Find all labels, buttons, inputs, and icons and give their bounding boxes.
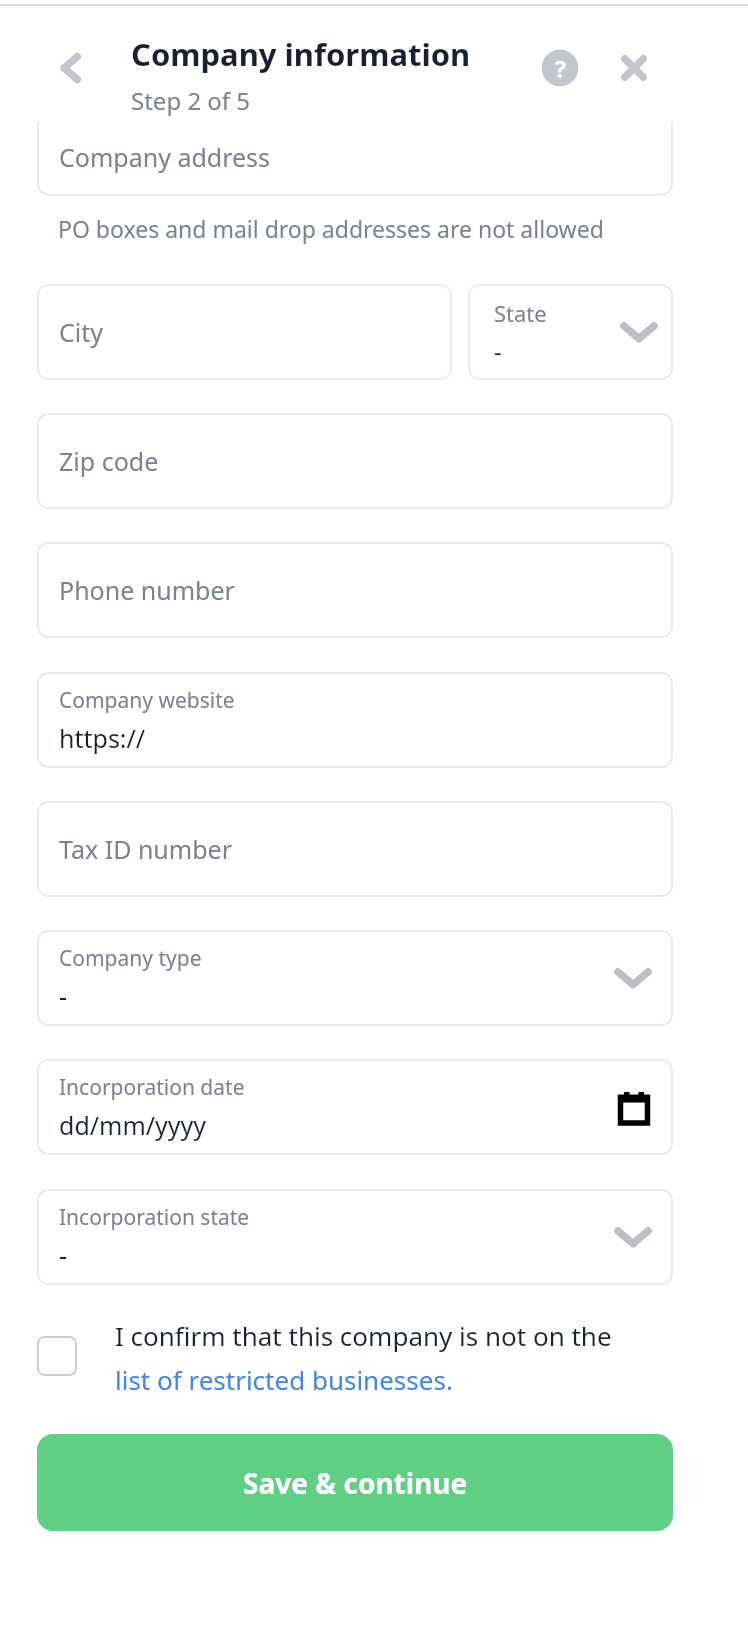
staticText: Incorporation date <box>59 1073 245 1102</box>
button[interactable]: Close <box>611 45 657 91</box>
button[interactable]: Incorporation state <box>37 1189 673 1285</box>
staticText: Incorporation state <box>59 1203 250 1232</box>
button[interactable]: Phone number <box>37 542 673 638</box>
staticText: Company information <box>131 33 471 75</box>
staticText: Tax ID number <box>59 832 232 866</box>
button[interactable]: Company address <box>37 122 673 196</box>
staticText: Company type <box>59 944 202 973</box>
staticText: State <box>494 298 547 328</box>
staticText: I confirm that this company is not on th… <box>115 1318 612 1353</box>
staticText: ? <box>555 53 566 84</box>
button[interactable]: Tax ID number <box>37 801 673 897</box>
button[interactable]: City <box>37 284 452 380</box>
staticText: Phone number <box>59 573 235 607</box>
staticText: dd/mm/yyyy <box>59 1108 207 1142</box>
button[interactable]: Company type <box>37 930 673 1026</box>
staticText: Zip code <box>59 444 159 478</box>
staticText: Step 2 of 5 <box>131 84 251 117</box>
staticText: Company website <box>59 686 235 715</box>
button[interactable]: I confirm that this company is not on th… <box>37 1318 673 1397</box>
staticText: - <box>59 979 68 1013</box>
staticText: PO boxes and mail drop addresses are not… <box>58 213 604 244</box>
staticText: Save & continue <box>243 1464 468 1502</box>
button[interactable]: Help <box>537 45 583 91</box>
staticText: - <box>494 334 502 367</box>
button[interactable]: Company website <box>37 672 673 768</box>
staticText: https:// <box>59 721 146 755</box>
staticText: list of restricted businesses. <box>115 1362 453 1397</box>
button[interactable]: Back <box>50 46 94 90</box>
staticText: - <box>59 1238 68 1272</box>
staticText: Company address <box>59 140 271 174</box>
button[interactable]: Incorporation date <box>37 1059 673 1155</box>
button[interactable]: Save & continue <box>37 1434 673 1531</box>
button[interactable]: Zip code <box>37 413 673 509</box>
staticText: City <box>59 315 104 349</box>
button[interactable]: State <box>468 284 673 380</box>
